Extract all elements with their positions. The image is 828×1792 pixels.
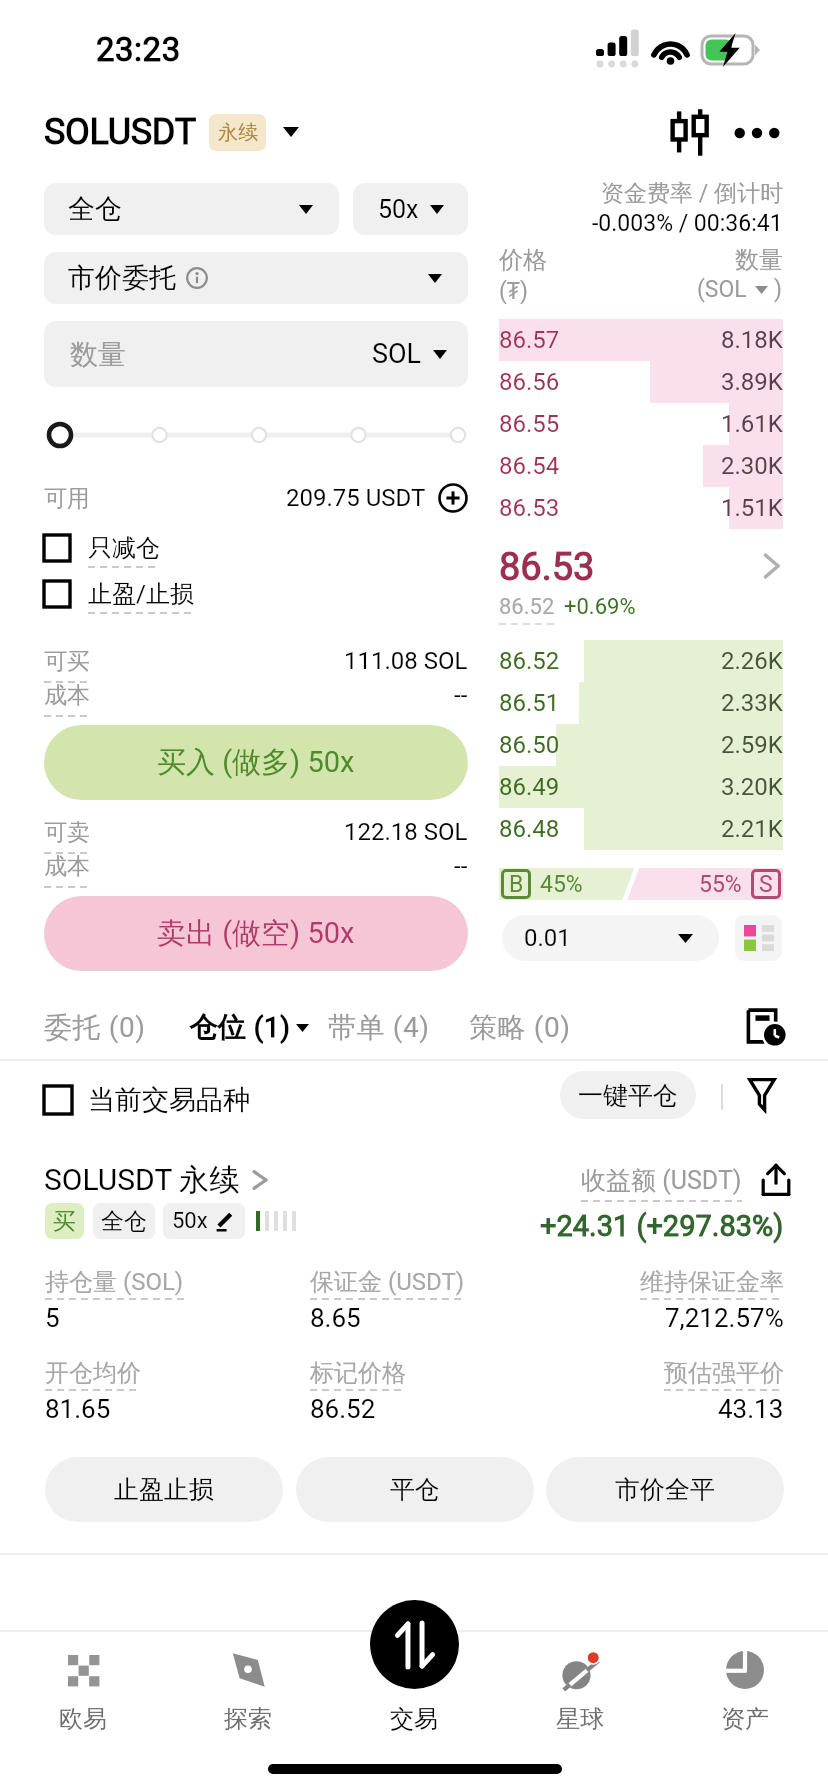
button[interactable]: Share xyxy=(760,1164,792,1196)
button[interactable]: 86.51 xyxy=(499,682,783,724)
staticText: 2.30K xyxy=(721,452,783,480)
staticText: 全仓 xyxy=(68,192,122,226)
staticText: 开仓均价 xyxy=(45,1358,141,1388)
button[interactable]: 86.48 xyxy=(499,808,783,850)
staticText: 5 xyxy=(45,1303,60,1333)
staticText: (SOL xyxy=(697,276,747,303)
staticText: 委托 (0) xyxy=(44,1010,146,1045)
staticText: 只减仓 xyxy=(88,533,160,563)
staticText: (₮) xyxy=(499,274,529,304)
staticText: 当前交易品种 xyxy=(88,1083,250,1117)
staticText: 86.53 xyxy=(499,494,560,522)
button[interactable]: Trade xyxy=(370,1600,459,1689)
button[interactable]: 当前交易品种 xyxy=(44,1078,250,1122)
staticText: 资金费率 / 倒计时 xyxy=(601,179,783,208)
button[interactable]: 买入 (做多) 50x xyxy=(44,725,468,800)
staticText: 仓位 (1) xyxy=(189,1010,291,1045)
staticText: 1.61K xyxy=(721,410,783,438)
button[interactable]: Chart xyxy=(664,106,718,160)
button[interactable]: 86.56 xyxy=(499,361,783,403)
button[interactable]: (SOL xyxy=(697,276,783,303)
staticText: 3.20K xyxy=(721,773,783,801)
staticText: 全仓 xyxy=(101,1207,147,1236)
staticText: 标记价格 xyxy=(310,1358,406,1388)
staticText: 持仓量 (SOL) xyxy=(45,1267,184,1297)
button[interactable]: 一键平仓 xyxy=(560,1071,696,1119)
staticText: 止盈止损 xyxy=(114,1474,214,1505)
staticText: 保证金 (USDT) xyxy=(310,1267,465,1297)
button[interactable]: 平仓 xyxy=(296,1457,534,1522)
button[interactable]: 带单 (4) xyxy=(328,1010,430,1045)
button[interactable]: 卖出 (做空) 50x xyxy=(44,896,468,971)
button[interactable]: 86.52 xyxy=(499,640,783,682)
button[interactable]: 86.57 xyxy=(499,319,783,361)
button[interactable]: 策略 (0) xyxy=(469,1010,571,1045)
staticText: 成本 xyxy=(44,852,90,881)
staticText: ) xyxy=(774,276,783,303)
staticText: 预估强平价 xyxy=(664,1358,784,1388)
staticText: 86.53 xyxy=(499,545,595,587)
staticText: 0.01 xyxy=(524,924,571,952)
staticText: 交易 xyxy=(390,1704,438,1734)
button[interactable]: 交易 xyxy=(332,1636,496,1756)
staticText: 2.59K xyxy=(721,731,783,759)
staticText: 一键平仓 xyxy=(578,1080,678,1111)
staticText: 55% xyxy=(699,871,742,898)
staticText: 86.57 xyxy=(499,326,560,354)
button[interactable]: 市价全平 xyxy=(546,1457,784,1522)
staticText: 收益额 (USDT) xyxy=(581,1165,742,1196)
button[interactable]: 86.53 xyxy=(499,487,783,529)
staticText: 1.51K xyxy=(721,494,783,522)
button[interactable]: Filter xyxy=(736,1068,788,1120)
staticText: 45% xyxy=(540,871,583,898)
button[interactable]: 50x xyxy=(163,1203,245,1239)
staticText: 探索 xyxy=(224,1704,272,1734)
button[interactable]: 86.49 xyxy=(499,766,783,808)
staticText: 市价全平 xyxy=(615,1474,715,1505)
button[interactable]: More options xyxy=(730,106,784,160)
staticText: 卖出 (做空) 50x xyxy=(157,915,355,952)
staticText: 86.52 xyxy=(499,647,560,675)
button[interactable]: Order book layout xyxy=(735,915,782,961)
button[interactable]: 委托 (0) xyxy=(44,1010,146,1045)
staticText: 2.21K xyxy=(721,815,783,843)
staticText: 209.75 USDT xyxy=(286,484,426,512)
button[interactable]: 50x xyxy=(353,183,468,235)
button[interactable]: 仓位 (1) xyxy=(189,1010,309,1045)
button[interactable]: Add funds xyxy=(438,483,468,513)
staticText: 50x xyxy=(172,1208,208,1234)
button[interactable]: 86.50 xyxy=(499,724,783,766)
staticText: 111.08 SOL xyxy=(344,647,468,675)
staticText: SOLUSDT xyxy=(44,111,196,153)
button[interactable]: 市价委托 xyxy=(44,252,468,304)
button[interactable]: 星球 xyxy=(498,1636,662,1756)
staticText: 86.49 xyxy=(499,773,560,801)
staticText: 星球 xyxy=(556,1704,604,1734)
staticText: 8.65 xyxy=(310,1303,361,1333)
button[interactable]: 只减仓 xyxy=(44,528,160,568)
button[interactable]: 数量 xyxy=(44,321,468,387)
button[interactable]: 86.54 xyxy=(499,445,783,487)
button[interactable]: 止盈止损 xyxy=(45,1457,283,1522)
button[interactable]: Order history xyxy=(744,1004,788,1048)
staticText: -0.003% / 00:36:41 xyxy=(592,210,783,237)
button[interactable]: SOLUSDT xyxy=(44,104,299,160)
button[interactable]: 探索 xyxy=(166,1636,330,1756)
staticText: 2.26K xyxy=(721,647,783,675)
button[interactable]: 资产 xyxy=(663,1636,827,1756)
staticText: 81.65 xyxy=(45,1394,111,1424)
staticText: 86.48 xyxy=(499,815,560,843)
button[interactable]: 欧易 xyxy=(1,1636,165,1756)
staticText: -- xyxy=(454,852,468,880)
staticText: 86.56 xyxy=(499,368,560,396)
staticText: 买 xyxy=(53,1207,76,1236)
staticText: 8.18K xyxy=(721,326,783,354)
staticText: 可买 xyxy=(44,647,90,676)
staticText: 市价委托 xyxy=(68,261,176,295)
button[interactable]: 86.55 xyxy=(499,403,783,445)
button[interactable]: 止盈/止损 xyxy=(44,574,194,614)
staticText: 86.52 xyxy=(310,1394,376,1424)
button[interactable]: 0.01 xyxy=(502,915,719,961)
button[interactable]: 全仓 xyxy=(44,183,339,235)
button[interactable]: SOLUSDT 永续 xyxy=(44,1158,270,1202)
